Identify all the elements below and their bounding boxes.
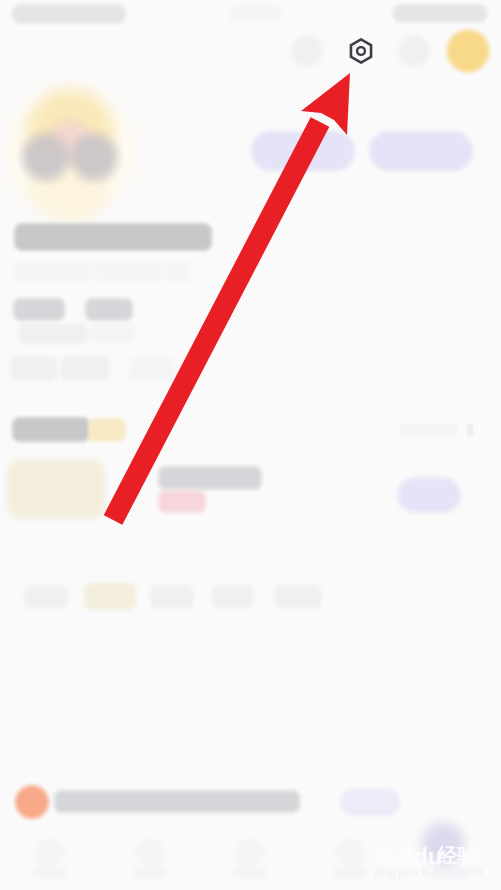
button[interactable]: Tab 4 [0, 0, 501, 890]
button[interactable]: Account [0, 0, 501, 890]
button[interactable]: All [0, 0, 501, 890]
button[interactable]: Tab 5 [0, 0, 501, 890]
button[interactable]: Avatar [0, 0, 501, 890]
button[interactable]: Share [0, 0, 501, 890]
button[interactable]: Edit profile [0, 0, 501, 890]
button[interactable]: Search [0, 0, 501, 890]
button[interactable]: Filter 3 [0, 0, 501, 890]
button[interactable]: Tab 1 [0, 0, 501, 890]
staticText: 经验 [437, 844, 477, 868]
button[interactable]: Selected filter [0, 0, 501, 890]
button[interactable]: Tab 3 [0, 0, 501, 890]
staticText: Baidu [377, 841, 442, 871]
staticText: jingyan.baidu.com [374, 863, 483, 879]
button[interactable]: Filter 4 [0, 0, 501, 890]
button[interactable]: View [0, 0, 501, 890]
button[interactable]: Buy [0, 0, 501, 890]
button[interactable]: Filter 5 [0, 0, 501, 890]
button[interactable]: Settings [0, 0, 501, 890]
button[interactable]: Tab 2 [0, 0, 501, 890]
button[interactable]: Messages [0, 0, 501, 890]
button[interactable]: See all [0, 0, 501, 890]
